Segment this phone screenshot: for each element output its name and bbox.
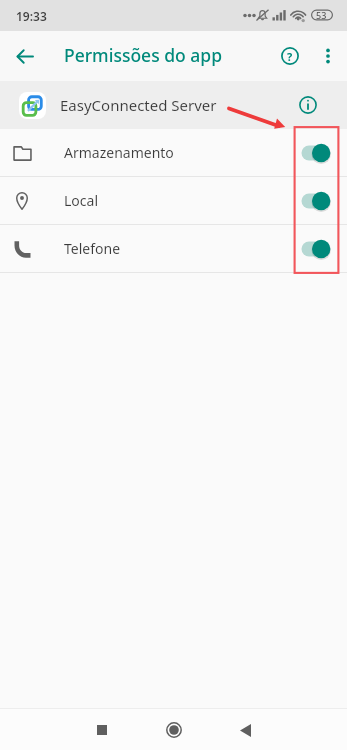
button[interactable]: Back — [225, 710, 265, 750]
staticText: 53 — [316, 9, 327, 21]
button[interactable]: Home — [154, 710, 194, 750]
button[interactable]: More options — [310, 38, 346, 74]
staticText: Telefone — [64, 239, 121, 258]
staticText: EasyConnected Server — [60, 95, 217, 115]
button[interactable]: App info — [292, 89, 324, 121]
staticText: Armazenamento — [64, 143, 174, 162]
button[interactable]: Armazenamento — [0, 129, 347, 176]
button[interactable]: EasyConnected Server — [0, 81, 347, 129]
staticText: 19:33 — [16, 8, 47, 24]
staticText: Permissões do app — [64, 43, 223, 67]
button[interactable]: Recent apps — [82, 710, 122, 750]
button[interactable]: Telefone — [0, 225, 347, 272]
button[interactable]: Toggle permission — [297, 186, 339, 216]
button[interactable]: Toggle permission — [297, 234, 339, 264]
button[interactable]: Help — [272, 38, 308, 74]
staticText: ? — [287, 49, 293, 64]
staticText: Local — [64, 191, 98, 210]
button[interactable]: Toggle permission — [297, 138, 339, 168]
button[interactable]: Back — [0, 31, 50, 81]
button[interactable]: Local — [0, 177, 347, 224]
